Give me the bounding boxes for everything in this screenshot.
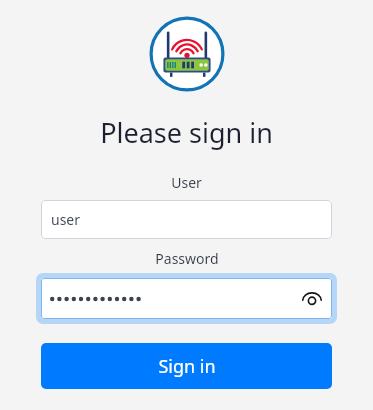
button[interactable]: Show password bbox=[41, 278, 332, 319]
button[interactable]: user bbox=[41, 200, 332, 239]
staticText: Please sign in bbox=[100, 114, 273, 151]
staticText: User bbox=[171, 173, 202, 192]
button[interactable]: Sign in bbox=[41, 343, 332, 389]
staticText: Password bbox=[155, 249, 219, 268]
staticText: user bbox=[51, 210, 81, 229]
staticText: Sign in bbox=[158, 354, 216, 379]
button[interactable]: Show password bbox=[296, 283, 328, 315]
